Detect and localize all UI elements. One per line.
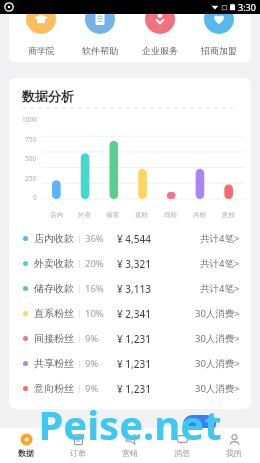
button[interactable]: 招商加盟	[192, 14, 246, 62]
staticText: 外卖收款	[34, 257, 74, 270]
staticText: 16%	[85, 282, 104, 295]
staticText: 营销	[122, 448, 138, 458]
staticText: ¥ 3,113	[117, 282, 151, 296]
staticText: 直系粉丝	[34, 307, 74, 320]
staticText: 共计4笔>	[200, 257, 240, 270]
staticText: 9%	[85, 332, 99, 345]
staticText: ¥ 3,321	[117, 257, 151, 271]
staticText: 30人消费>	[195, 382, 240, 395]
button[interactable]: 商学院	[14, 14, 68, 62]
staticText: 意粉	[222, 211, 235, 219]
staticText: 数据分析	[22, 88, 74, 104]
staticText: 商学院	[28, 45, 55, 56]
staticText: 30人消费>	[195, 332, 240, 345]
button[interactable]: 共享粉丝	[9, 351, 251, 376]
staticText: 30人消费>	[195, 307, 240, 320]
staticText: 意向粉丝	[34, 382, 74, 395]
staticText: 外卖	[78, 211, 91, 219]
button[interactable]: 软件帮助	[73, 14, 127, 62]
staticText: 间粉	[164, 211, 177, 219]
staticText: 0	[33, 193, 37, 202]
staticText: 500	[25, 154, 37, 163]
staticText: 数据	[18, 448, 34, 458]
staticText: 直粉	[135, 211, 148, 219]
staticText: 储置	[106, 211, 119, 219]
staticText: 订单	[70, 448, 86, 458]
staticText: 9%	[85, 357, 99, 370]
staticText: 店内收款	[34, 232, 74, 245]
staticText: ¥ 1,231	[117, 332, 151, 346]
button[interactable]: 意向粉丝	[9, 376, 251, 401]
staticText: 20%	[85, 257, 104, 270]
button[interactable]: 直系粉丝	[9, 301, 251, 326]
staticText: 共计4笔>	[200, 232, 240, 245]
staticText: 9%	[85, 382, 99, 395]
button[interactable]: 店内收款	[9, 226, 251, 251]
staticText: 共享粉丝	[34, 357, 74, 370]
button[interactable]: 我的	[208, 428, 260, 463]
button[interactable]: 消息	[156, 428, 208, 463]
staticText: Peise.net	[0, 397, 260, 451]
staticText: 1000	[22, 115, 37, 124]
staticText: 36%	[85, 232, 104, 245]
staticText: 招商加盟	[201, 45, 237, 56]
staticText: 消息	[174, 448, 190, 458]
staticText: ¥ 4,544	[117, 232, 151, 246]
staticText: ¥ 1,231	[117, 382, 151, 396]
button[interactable]	[183, 415, 216, 433]
button[interactable]: 储存收款	[9, 276, 251, 301]
staticText: 软件帮助	[82, 45, 118, 56]
staticText: 共粉	[193, 211, 206, 219]
staticText: 间接粉丝	[34, 332, 74, 345]
staticText: ¥ 1,231	[117, 357, 151, 371]
button[interactable]: 营销	[104, 428, 156, 463]
staticText: 250	[25, 174, 37, 183]
staticText: 10%	[85, 307, 104, 320]
staticText: 30人消费>	[195, 357, 240, 370]
staticText: 我的	[226, 448, 242, 458]
button[interactable]: 间接粉丝	[9, 326, 251, 351]
staticText: 企业服务	[142, 45, 178, 56]
staticText: 店内	[50, 211, 63, 219]
staticText: 750	[25, 135, 37, 144]
button[interactable]: 订单	[52, 428, 104, 463]
staticText: ¥ 2,341	[117, 307, 151, 321]
button[interactable]: 企业服务	[133, 14, 187, 62]
button[interactable]: 数据	[0, 428, 52, 463]
staticText: 储存收款	[34, 282, 74, 295]
staticText: 3:30	[238, 1, 256, 13]
staticText: 共计4笔>	[200, 282, 240, 295]
button[interactable]: 外卖收款	[9, 251, 251, 276]
